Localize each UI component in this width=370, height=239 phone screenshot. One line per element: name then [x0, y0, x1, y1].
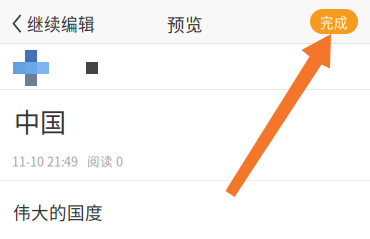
staticText: 阅读 0 [87, 152, 123, 170]
staticText: 完成 [320, 12, 348, 31]
staticText: 11-10 21:49 [12, 152, 78, 170]
button[interactable]: 完成 [310, 9, 358, 34]
staticText: 预览 [167, 11, 203, 36]
staticText: 继续编辑 [27, 12, 95, 35]
staticText: 伟大的国度 [13, 199, 103, 224]
staticText: 中国 [14, 102, 66, 140]
button[interactable]: 继续编辑 [0, 2, 105, 45]
